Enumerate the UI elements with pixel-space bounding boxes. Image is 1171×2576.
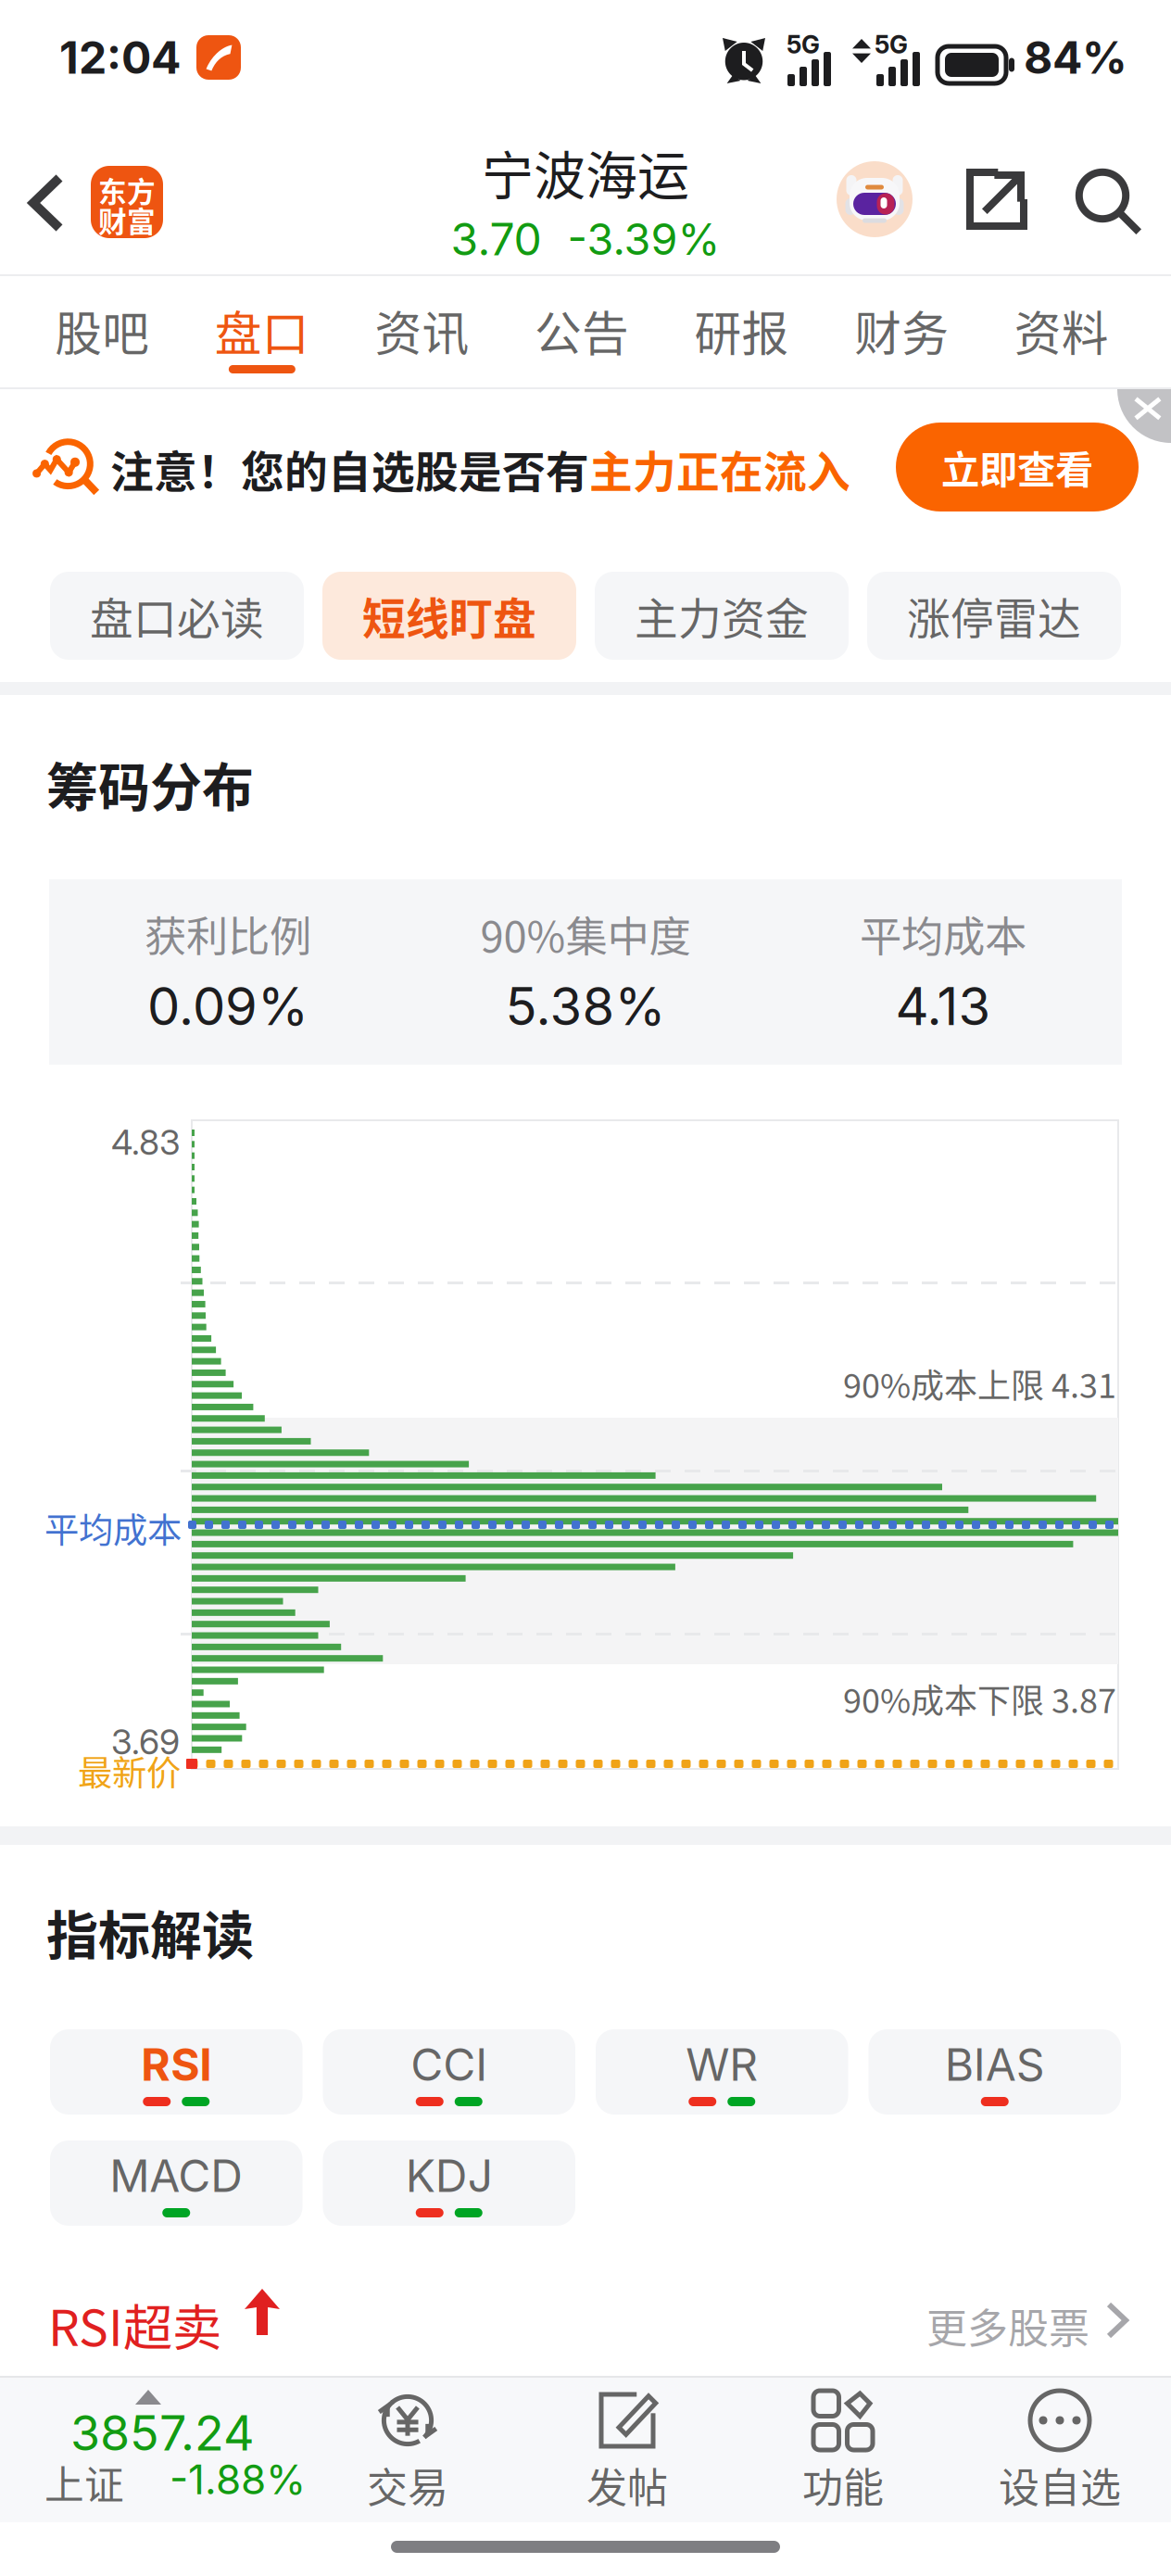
staticText: 筹码分布: [46, 746, 254, 821]
button[interactable]: Back: [8, 153, 84, 253]
button[interactable]: RSI超卖: [0, 2285, 1171, 2370]
button[interactable]: KDJ: [323, 2140, 575, 2226]
button[interactable]: RSI: [50, 2029, 302, 2115]
button[interactable]: 财务: [822, 276, 982, 387]
staticText: 获利比例: [145, 903, 311, 964]
staticText: 90%成本下限 3.87: [843, 1674, 1116, 1723]
button[interactable]: 发帖: [522, 2378, 733, 2522]
button[interactable]: 研报: [662, 276, 822, 387]
staticText: 3.70: [451, 212, 541, 266]
staticText: 涨停雷达: [907, 584, 1081, 647]
button[interactable]: CCI: [323, 2029, 575, 2115]
button[interactable]: 涨停雷达: [867, 572, 1121, 660]
staticText: 盘口必读: [90, 584, 264, 647]
staticText: 主力资金: [635, 584, 809, 647]
staticText: BIAS: [945, 2038, 1045, 2091]
staticText: 资讯: [375, 297, 469, 365]
staticText: 上证: [44, 2454, 124, 2511]
staticText: KDJ: [406, 2149, 493, 2203]
button[interactable]: 设自选: [954, 2378, 1165, 2522]
staticText: 立即查看: [941, 439, 1093, 495]
staticText: 更多股票: [926, 2296, 1089, 2355]
staticText: 功能: [802, 2456, 884, 2515]
staticText: 财务: [854, 297, 949, 365]
staticText: 最新价: [78, 1746, 181, 1796]
button[interactable]: 主力资金: [595, 572, 849, 660]
button[interactable]: 资讯: [342, 276, 502, 387]
button[interactable]: 盘口: [182, 276, 342, 387]
button[interactable]: 盘口必读: [50, 572, 304, 660]
staticText: 股吧: [55, 297, 149, 365]
button[interactable]: 资料: [981, 276, 1141, 387]
staticText: 短线盯盘: [362, 584, 536, 647]
button[interactable]: Search: [1064, 157, 1154, 247]
button[interactable]: 交易: [302, 2378, 513, 2522]
staticText: RSI: [141, 2038, 211, 2091]
staticText: 平均成本: [44, 1503, 182, 1553]
staticText: RSI超卖: [48, 2289, 221, 2360]
button[interactable]: MACD: [50, 2140, 302, 2226]
button[interactable]: Share: [951, 154, 1042, 245]
staticText: 平均成本: [860, 903, 1026, 964]
button[interactable]: 短线盯盘: [322, 572, 576, 660]
staticText: 0.09%: [147, 975, 308, 1038]
button[interactable]: BIAS: [869, 2029, 1121, 2115]
staticText: 5G: [875, 30, 908, 60]
staticText: 发帖: [586, 2456, 668, 2515]
staticText: 5.38%: [505, 975, 666, 1038]
button[interactable]: East Money home: [82, 157, 172, 247]
staticText: 宁波海运: [482, 134, 689, 210]
staticText: WR: [686, 2038, 758, 2091]
staticText: 5G: [787, 30, 820, 60]
staticText: -1.88%: [170, 2455, 306, 2504]
staticText: 90%集中度: [480, 903, 691, 964]
staticText: 公告: [535, 297, 629, 365]
staticText: 盘口: [215, 297, 309, 365]
staticText: 90%成本上限 4.31: [843, 1359, 1116, 1408]
staticText: MACD: [110, 2149, 243, 2203]
button[interactable]: 3857.24: [0, 2378, 315, 2522]
staticText: 3.69: [111, 1721, 180, 1763]
staticText: 研报: [694, 297, 789, 365]
staticText: 12:04: [59, 31, 181, 84]
button[interactable]: 股吧: [22, 276, 182, 387]
button[interactable]: 公告: [502, 276, 662, 387]
staticText: 4.13: [895, 975, 991, 1038]
staticText: 设自选: [999, 2456, 1121, 2515]
staticText: 主力正在流入: [589, 437, 850, 500]
button[interactable]: AI assistant: [827, 152, 922, 246]
staticText: -3.39%: [567, 213, 720, 265]
staticText: 交易: [367, 2456, 448, 2515]
staticText: 财富: [98, 199, 156, 240]
button[interactable]: 立即查看: [896, 423, 1139, 511]
staticText: 84%: [1024, 31, 1127, 84]
button[interactable]: 功能: [737, 2378, 949, 2522]
staticText: 东方: [98, 170, 156, 211]
staticText: 注意！: [110, 437, 241, 500]
button[interactable]: WR: [596, 2029, 848, 2115]
staticText: 您的自选股是否有: [241, 437, 589, 500]
staticText: 3857.24: [70, 2404, 255, 2462]
staticText: CCI: [411, 2038, 487, 2091]
staticText: 4.83: [111, 1121, 181, 1163]
staticText: 资料: [1014, 297, 1109, 365]
staticText: 指标解读: [46, 1894, 254, 1969]
button[interactable]: Close: [1101, 389, 1171, 443]
